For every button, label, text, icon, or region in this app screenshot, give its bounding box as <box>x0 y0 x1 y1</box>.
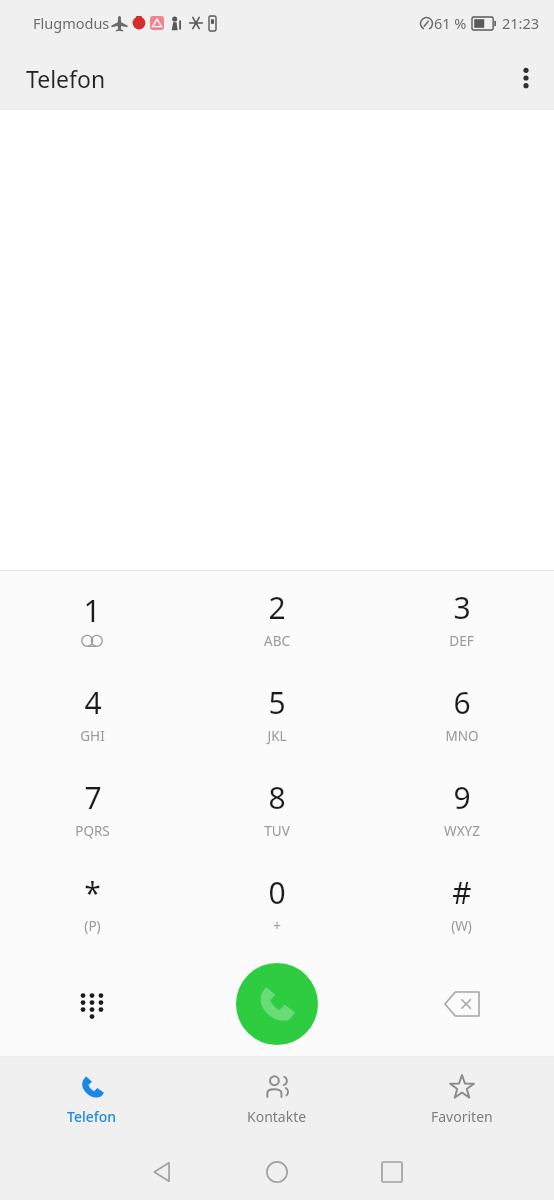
staticText: + <box>273 917 281 935</box>
button[interactable]: Kontakte <box>184 1057 369 1143</box>
staticText: MNO <box>445 727 479 745</box>
staticText: 3 <box>453 587 471 628</box>
staticText: (P) <box>84 917 101 935</box>
button[interactable]: 0 <box>184 856 369 951</box>
staticText: 61 % <box>434 13 467 33</box>
staticText: 6 <box>453 682 471 723</box>
button[interactable]: # <box>369 856 554 951</box>
staticText: PQRS <box>75 822 110 840</box>
staticText: TUV <box>264 822 290 840</box>
button[interactable]: 1 <box>0 571 184 666</box>
staticText: (W) <box>451 917 472 935</box>
button[interactable]: * <box>0 856 184 951</box>
staticText: # <box>452 872 472 913</box>
button[interactable]: 5 <box>184 666 369 761</box>
staticText: Telefon <box>26 63 106 94</box>
staticText: DEF <box>449 632 474 650</box>
button[interactable]: Home <box>219 1143 334 1200</box>
button[interactable]: 7 <box>0 761 184 856</box>
button[interactable]: Recents <box>334 1143 449 1200</box>
staticText: Favoriten <box>431 1107 493 1126</box>
staticText: 7 <box>84 777 102 818</box>
button[interactable]: 3 <box>369 571 554 666</box>
staticText: 8 <box>268 777 286 818</box>
button[interactable]: Hide dialpad <box>0 951 184 1056</box>
button[interactable]: Call <box>236 963 318 1045</box>
staticText: 0 <box>268 872 286 913</box>
staticText: * <box>84 872 101 913</box>
staticText: GHI <box>80 727 105 745</box>
button[interactable]: 8 <box>184 761 369 856</box>
staticText: JKL <box>267 727 287 745</box>
button[interactable]: Favoriten <box>369 1057 554 1143</box>
button[interactable]: Back <box>104 1143 219 1200</box>
staticText: ABC <box>264 632 290 650</box>
button[interactable]: More options <box>498 50 554 106</box>
staticText: 9 <box>453 777 471 818</box>
staticText: 5 <box>268 682 286 723</box>
staticText: 2 <box>268 587 286 628</box>
staticText: Telefon <box>67 1107 117 1126</box>
button[interactable]: 2 <box>184 571 369 666</box>
button[interactable]: 4 <box>0 666 184 761</box>
staticText: 1 <box>83 590 101 631</box>
button[interactable]: 6 <box>369 666 554 761</box>
staticText: 4 <box>84 682 102 723</box>
staticText: WXYZ <box>444 822 480 840</box>
staticText: 21:23 <box>502 13 540 33</box>
staticText: Flugmodus <box>33 13 110 33</box>
button[interactable]: Telefon <box>0 1057 184 1143</box>
button[interactable]: 9 <box>369 761 554 856</box>
button[interactable]: Delete <box>369 951 554 1056</box>
staticText: Kontakte <box>247 1107 307 1126</box>
